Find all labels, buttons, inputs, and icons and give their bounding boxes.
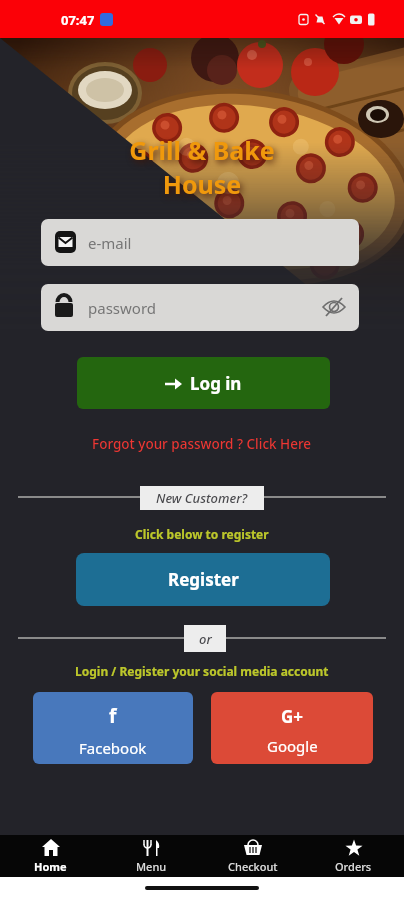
staticText: Login / Register your social media accou… bbox=[75, 663, 329, 679]
staticText: New Customer? bbox=[156, 489, 248, 507]
button[interactable]: Log in bbox=[77, 357, 330, 409]
staticText: Menu bbox=[136, 859, 167, 874]
button[interactable]: G+ bbox=[211, 692, 373, 764]
staticText: Forgot your password ? Click Here bbox=[92, 435, 312, 453]
staticText: G+ bbox=[281, 705, 304, 728]
staticText: or bbox=[199, 630, 212, 648]
staticText: Click below to register bbox=[135, 526, 269, 542]
staticText: f bbox=[109, 703, 117, 729]
button[interactable]: password bbox=[41, 284, 359, 331]
staticText: Checkout bbox=[228, 859, 278, 874]
button[interactable]: e-mail bbox=[41, 219, 359, 266]
staticText: Home bbox=[34, 859, 67, 874]
button[interactable]: Home bbox=[0, 835, 101, 877]
staticText: Log in bbox=[190, 372, 242, 395]
staticText: Register bbox=[168, 568, 239, 591]
button[interactable]: Register bbox=[76, 553, 330, 606]
staticText: password bbox=[88, 298, 156, 318]
staticText: e-mail bbox=[88, 233, 132, 253]
staticText: 07:47 bbox=[61, 11, 95, 29]
staticText: Grill & Bake House bbox=[129, 133, 275, 201]
staticText: Facebook bbox=[79, 738, 147, 758]
button[interactable]: Forgot your password ? Click Here bbox=[0, 435, 404, 453]
button[interactable]: Orders bbox=[303, 835, 404, 877]
button[interactable]: Menu bbox=[101, 835, 202, 877]
staticText: Orders bbox=[335, 859, 372, 874]
button[interactable]: Checkout bbox=[202, 835, 303, 877]
staticText: Google bbox=[267, 736, 318, 756]
button[interactable]: f bbox=[33, 692, 193, 764]
